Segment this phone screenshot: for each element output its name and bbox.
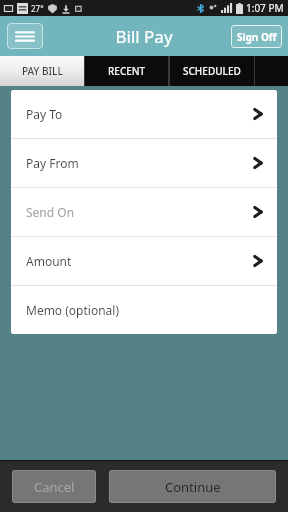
button[interactable]: Sign Off [231,25,282,48]
staticText: Pay To [26,106,63,122]
button[interactable]: RECENT [84,56,169,86]
button[interactable]: PAY BILL [0,56,84,86]
staticText: SCHEDULED [183,64,241,78]
button[interactable]: Menu [7,23,43,49]
staticText: 27° [31,3,44,14]
button[interactable]: Continue [109,470,276,503]
button[interactable]: SCHEDULED [169,56,255,86]
button[interactable]: Pay From [11,139,277,187]
staticText: Pay From [26,155,79,171]
staticText: Sign Off [237,30,277,44]
button[interactable]: Pay To [11,90,277,138]
staticText: Amount [26,253,72,269]
staticText: Memo (optional) [26,302,120,318]
staticText: PAY BILL [22,64,63,78]
button[interactable]: Send On [11,188,277,236]
button[interactable]: Memo (optional) [11,286,277,334]
staticText: Cancel [34,478,75,496]
staticText: Bill Pay [115,25,173,48]
staticText: Send On [26,204,75,220]
staticText: Continue [165,478,221,496]
button[interactable]: Cancel [12,470,96,503]
button[interactable]: Amount [11,237,277,285]
staticText: RECENT [108,64,146,78]
staticText: 1:07 PM [246,1,284,15]
